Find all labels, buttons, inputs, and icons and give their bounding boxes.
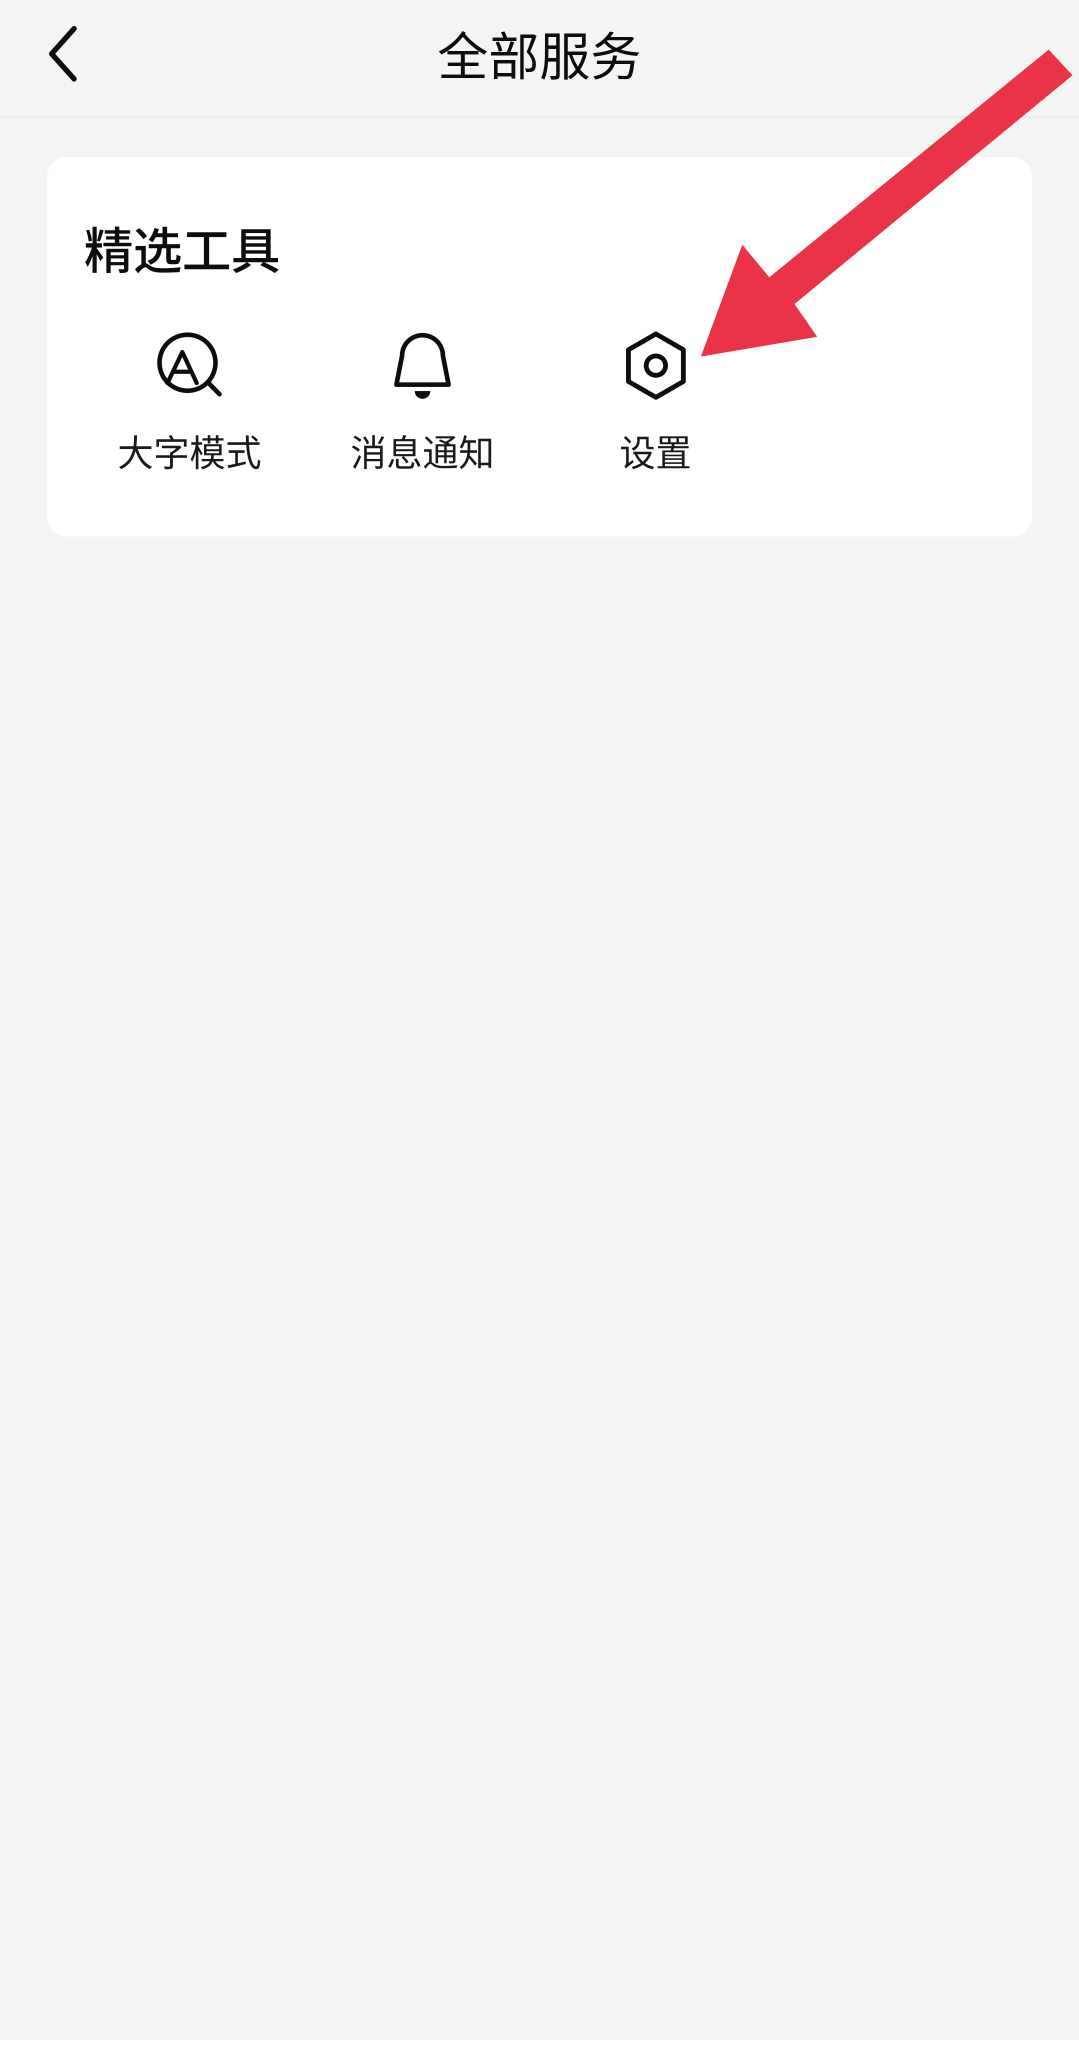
button[interactable]: 大字模式 [73,332,306,476]
staticText: 大字模式 [117,424,261,476]
staticText: 设置 [619,424,691,476]
button[interactable]: 设置 [539,332,772,476]
staticText: 消息通知 [350,424,494,476]
button[interactable]: 消息通知 [306,332,539,476]
staticText: 精选工具 [84,211,280,282]
staticText: 全部服务 [437,16,641,90]
button[interactable]: Back [0,0,110,118]
